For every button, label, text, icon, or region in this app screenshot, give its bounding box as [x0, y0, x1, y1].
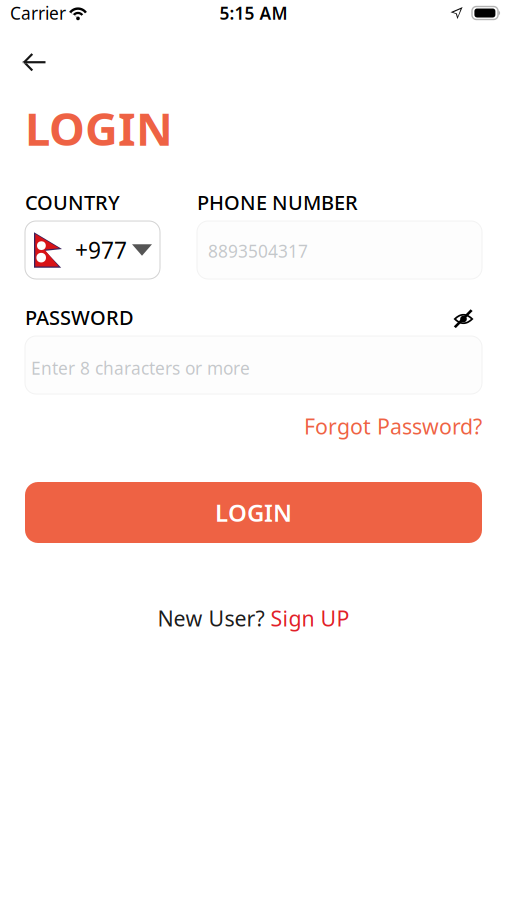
- staticText: LOGIN: [215, 497, 292, 528]
- staticText: PASSWORD: [25, 304, 134, 331]
- staticText: 8893504317: [208, 239, 308, 262]
- staticText: COUNTRY: [25, 189, 120, 216]
- staticText: Carrier: [10, 1, 66, 24]
- button[interactable]: Forgot Password?: [304, 412, 482, 440]
- staticText: LOGIN: [25, 98, 173, 158]
- button[interactable]: +977: [25, 221, 160, 279]
- button[interactable]: Show password: [448, 304, 479, 334]
- staticText: Sign UP: [270, 604, 349, 632]
- staticText: 5:15 AM: [219, 1, 287, 24]
- staticText: PHONE NUMBER: [197, 189, 358, 216]
- staticText: New User?: [157, 604, 270, 632]
- button[interactable]: Back: [11, 42, 56, 82]
- staticText: +977: [75, 235, 127, 265]
- staticText: Forgot Password?: [304, 412, 482, 440]
- staticText: Enter 8 characters or more: [31, 356, 250, 379]
- button[interactable]: Sign UP: [270, 604, 349, 632]
- button[interactable]: LOGIN: [25, 482, 482, 543]
